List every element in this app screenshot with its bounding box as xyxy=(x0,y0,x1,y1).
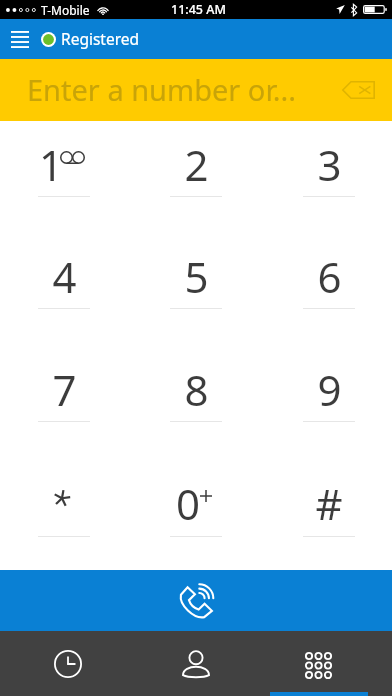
button[interactable]: Call xyxy=(0,570,392,631)
staticText: 6 xyxy=(317,248,342,300)
button[interactable]: # xyxy=(262,459,392,572)
staticText: 4 xyxy=(52,248,77,300)
staticText: # xyxy=(315,475,343,527)
button[interactable]: Menu xyxy=(0,19,39,59)
button[interactable]: 5 xyxy=(129,234,262,347)
staticText: 7 xyxy=(52,361,77,413)
button[interactable]: Contacts xyxy=(135,631,257,696)
staticText: 5 xyxy=(184,248,209,300)
button[interactable]: 2 xyxy=(129,121,262,234)
button[interactable]: Dialpad xyxy=(257,631,380,696)
button[interactable]: 8 xyxy=(129,346,262,459)
staticText: T-Mobile xyxy=(41,2,90,18)
button[interactable]: Recents xyxy=(0,631,135,696)
button[interactable]: Backspace xyxy=(328,59,388,121)
button[interactable]: 4 xyxy=(0,234,130,347)
staticText: Registered xyxy=(61,28,140,49)
staticText: 2 xyxy=(184,136,209,188)
button[interactable]: 0 xyxy=(129,459,262,572)
staticText: 9 xyxy=(317,361,342,413)
button[interactable]: 9 xyxy=(262,346,392,459)
staticText: 8 xyxy=(184,361,209,413)
staticText: Enter a number or... xyxy=(27,70,297,109)
button[interactable]: 3 xyxy=(262,121,392,234)
button[interactable]: 1 xyxy=(0,121,130,234)
staticText: 1 xyxy=(39,136,64,188)
staticText: 3 xyxy=(317,136,342,188)
button[interactable]: 6 xyxy=(262,234,392,347)
staticText: 11:45 AM xyxy=(171,1,226,18)
button[interactable] xyxy=(0,459,130,572)
staticText: 0 xyxy=(176,475,201,527)
button[interactable]: 7 xyxy=(0,346,130,459)
